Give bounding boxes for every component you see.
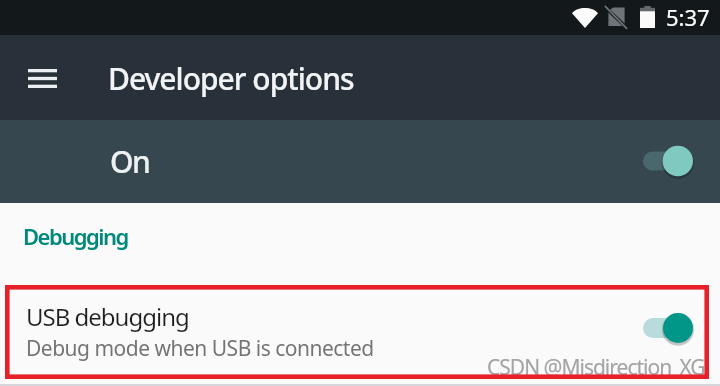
staticText: Debug mode when USB is connected [26,334,374,363]
staticText: Debugging [23,221,128,251]
button[interactable]: Toggle switch [643,310,703,346]
staticText: Developer options [108,58,354,99]
button[interactable]: Toggle switch [643,143,703,179]
staticText: USB debugging [26,300,189,333]
staticText: CSDN @Misdirection_XG [487,353,705,382]
button[interactable]: Open navigation drawer [14,50,70,106]
staticText: On [110,141,150,182]
button[interactable]: USB debugging [5,285,709,379]
button[interactable]: On [0,120,720,203]
staticText: 5:37 [666,2,710,32]
